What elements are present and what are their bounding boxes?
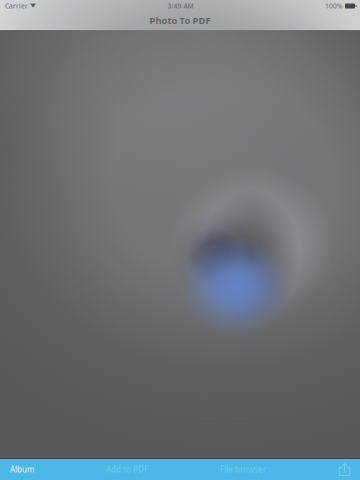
button[interactable]: File browser (215, 459, 271, 480)
staticText: Add to PDF (106, 464, 148, 475)
button[interactable]: Album (5, 459, 39, 480)
staticText: File browser (220, 464, 266, 475)
staticText: 100% (325, 2, 343, 10)
button[interactable]: Share (333, 459, 356, 480)
staticText: Album (10, 464, 34, 475)
staticText: 3:49 AM (167, 2, 193, 10)
staticText: Photo To PDF (149, 14, 210, 27)
button[interactable]: Add to PDF (101, 459, 153, 480)
staticText: Carrier (5, 2, 28, 10)
